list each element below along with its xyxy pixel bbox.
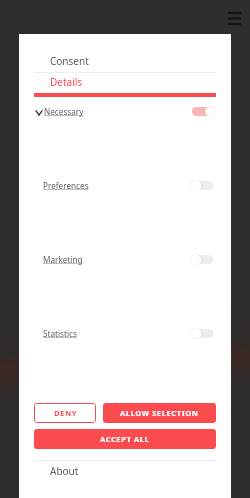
button[interactable]: Marketing (34, 252, 216, 266)
button[interactable]: Menu (225, 9, 243, 25)
button[interactable]: Disabled (192, 180, 216, 191)
button[interactable]: Statistics (34, 326, 216, 340)
staticText: Statistics (43, 328, 77, 339)
button[interactable]: Preferences (34, 178, 216, 192)
staticText: ALLOW SELECTION (120, 408, 199, 418)
button[interactable]: Disabled (192, 328, 216, 339)
staticText: Preferences (43, 180, 89, 191)
staticText: Consent (50, 54, 89, 68)
button[interactable]: About (19, 459, 231, 482)
button[interactable]: Enabled (192, 106, 216, 117)
staticText: DENY (54, 408, 77, 418)
button[interactable]: Necessary (34, 104, 216, 118)
button[interactable]: DENY (34, 403, 96, 423)
staticText: Marketing (43, 254, 83, 265)
staticText: Details (50, 75, 83, 89)
staticText: About (50, 464, 79, 478)
button[interactable]: Consent (19, 49, 231, 72)
button[interactable]: Details (19, 70, 231, 93)
button[interactable]: ACCEPT ALL (34, 429, 216, 449)
button[interactable]: Disabled (192, 254, 216, 265)
button[interactable]: ALLOW SELECTION (103, 403, 216, 423)
staticText: Necessary (44, 106, 84, 117)
staticText: ACCEPT ALL (100, 434, 150, 444)
